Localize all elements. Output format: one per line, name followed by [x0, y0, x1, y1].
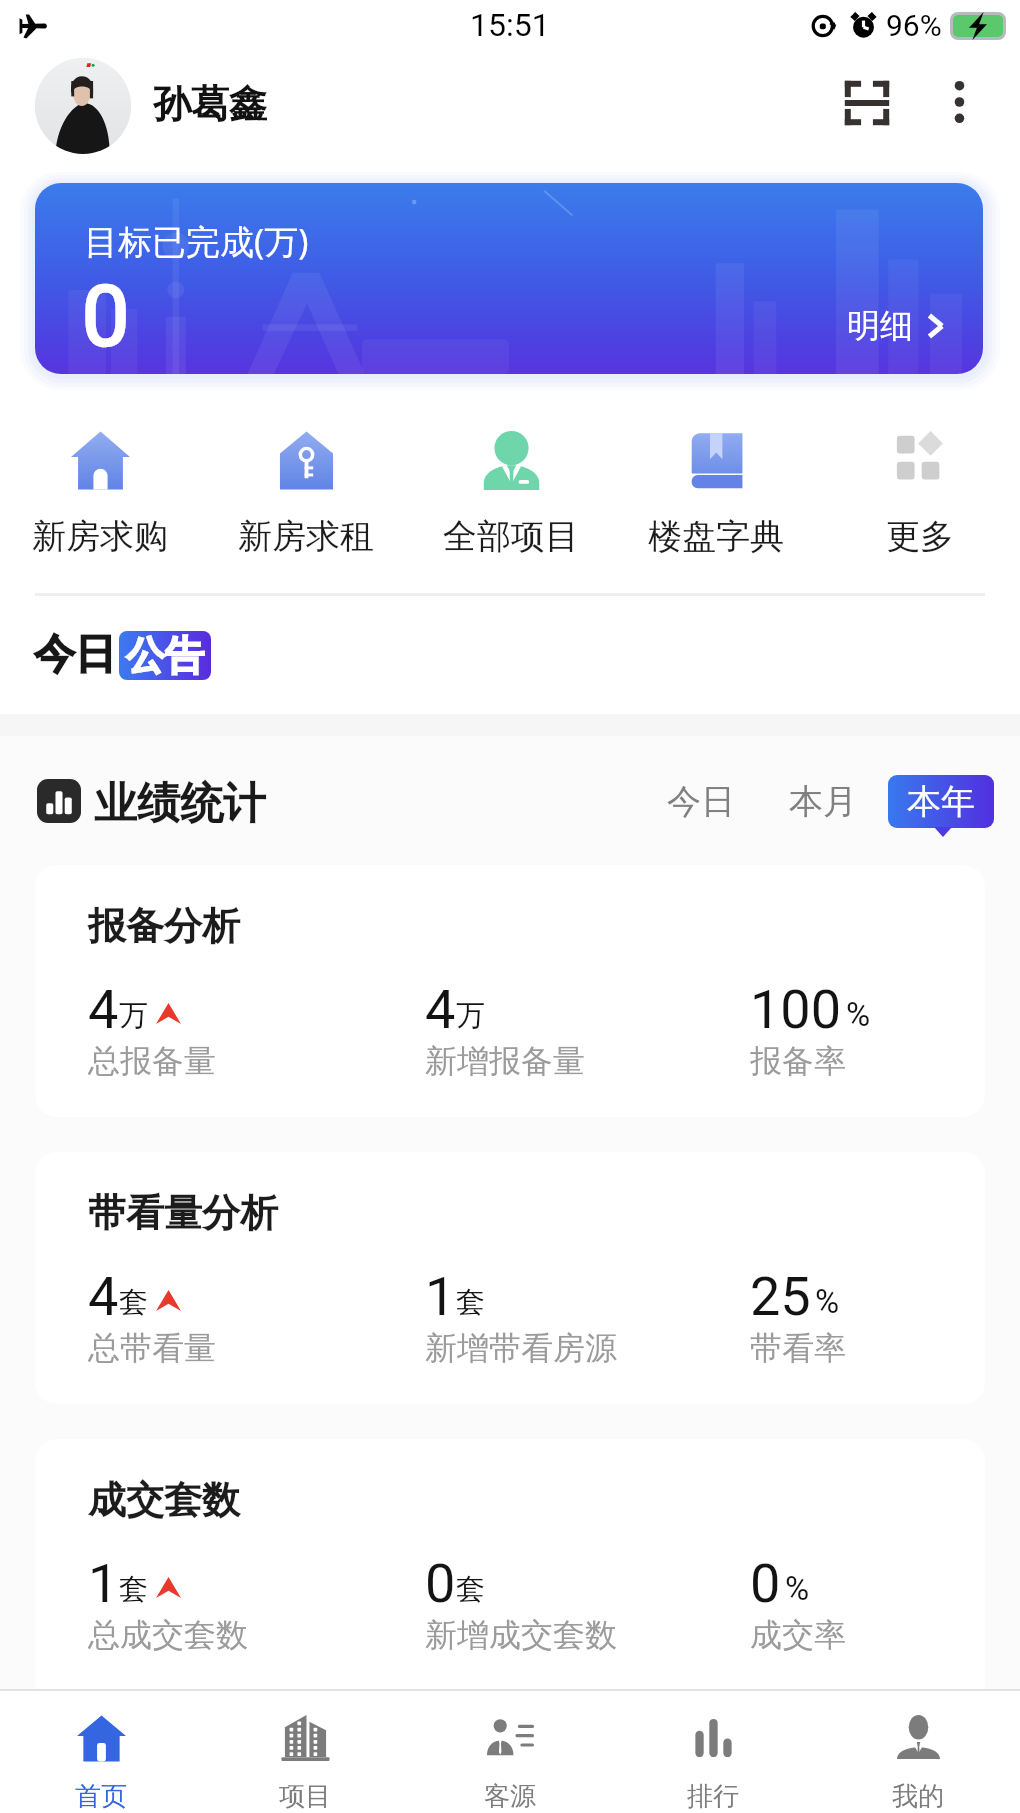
staticText: 总带看量 [88, 1328, 216, 1368]
button[interactable]: 楼盘字典 [621, 431, 811, 558]
staticText: 1 [88, 1552, 119, 1615]
button[interactable]: 首页 [11, 1714, 191, 1813]
staticText: 客源 [484, 1780, 536, 1813]
staticText: 套 [119, 1284, 148, 1321]
button[interactable]: 明细 [847, 305, 951, 347]
staticText: 今日 [34, 629, 116, 681]
staticText: 全部项目 [443, 515, 579, 558]
staticText: 万 [119, 997, 148, 1034]
staticText: 套 [119, 1571, 148, 1608]
staticText: % [785, 1569, 810, 1608]
button[interactable]: 排行 [623, 1714, 803, 1813]
staticText: 业绩统计 [94, 777, 266, 831]
button[interactable]: Scan QR code [830, 66, 904, 140]
staticText: 总成交套数 [88, 1615, 248, 1655]
staticText: 项目 [279, 1780, 331, 1813]
button[interactable]: 目标已完成(万) [35, 183, 983, 374]
staticText: 更多 [886, 515, 954, 558]
staticText: 新增带看房源 [425, 1328, 617, 1368]
staticText: 15:51 [470, 6, 550, 44]
staticText: 排行 [687, 1780, 739, 1813]
staticText: 套 [456, 1284, 485, 1321]
button[interactable]: 今日 [656, 773, 746, 831]
staticText: 本月 [789, 780, 857, 823]
button[interactable]: 本年 [888, 775, 994, 828]
staticText: 今日 [667, 780, 735, 823]
button[interactable]: User avatar [35, 58, 131, 154]
button[interactable]: 全部项目 [416, 431, 606, 558]
staticText: 万 [456, 997, 485, 1034]
staticText: 报备率 [750, 1041, 846, 1081]
staticText: % [846, 995, 871, 1034]
staticText: 新增成交套数 [425, 1615, 617, 1655]
staticText: 带看量分析 [88, 1189, 278, 1237]
staticText: 新增报备量 [425, 1041, 585, 1081]
staticText: 成交率 [750, 1615, 846, 1655]
staticText: 明细 [847, 305, 913, 347]
staticText: 我的 [892, 1780, 944, 1813]
button[interactable]: 今日 [34, 629, 211, 681]
staticText: 0 [82, 267, 130, 365]
button[interactable]: 客源 [420, 1714, 600, 1813]
staticText: 25 [750, 1265, 811, 1328]
staticText: 总报备量 [88, 1041, 216, 1081]
staticText: % [815, 1282, 840, 1321]
staticText: 本年 [907, 780, 975, 823]
staticText: 96% [886, 8, 942, 43]
staticText: 新房求购 [32, 515, 168, 558]
staticText: 4 [88, 978, 119, 1041]
staticText: 孙葛鑫 [153, 80, 267, 128]
staticText: 公告 [126, 631, 204, 680]
staticText: 套 [456, 1571, 485, 1608]
staticText: 新房求租 [238, 515, 374, 558]
button[interactable]: 报备分析 [35, 865, 985, 1117]
staticText: 1 [425, 1265, 456, 1328]
button[interactable]: More options [935, 78, 983, 126]
staticText: 0 [750, 1552, 781, 1615]
staticText: 4 [425, 978, 456, 1041]
staticText: 4 [88, 1265, 119, 1328]
staticText: 报备分析 [88, 902, 240, 950]
button[interactable]: 成交套数 [35, 1439, 985, 1729]
button[interactable]: 带看量分析 [35, 1152, 985, 1404]
button[interactable]: 新房求购 [5, 431, 195, 558]
button[interactable]: 项目 [215, 1714, 395, 1813]
staticText: 带看率 [750, 1328, 846, 1368]
button[interactable]: 更多 [825, 431, 1015, 558]
staticText: 目标已完成(万) [84, 218, 309, 264]
staticText: 楼盘字典 [648, 515, 784, 558]
button[interactable]: 我的 [828, 1714, 1008, 1813]
staticText: 0 [425, 1552, 456, 1615]
staticText: 首页 [75, 1780, 127, 1813]
button[interactable]: 新房求租 [211, 431, 401, 558]
button[interactable]: 本月 [778, 773, 868, 831]
staticText: 100 [750, 978, 842, 1041]
staticText: 成交套数 [88, 1476, 240, 1524]
